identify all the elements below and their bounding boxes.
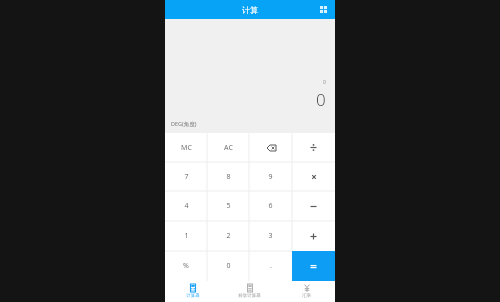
- staticText: 计算器: [186, 293, 200, 299]
- staticText: 3: [268, 231, 273, 241]
- button[interactable]: 2: [207, 221, 249, 251]
- staticText: 0: [316, 88, 326, 111]
- button[interactable]: Plus: [292, 221, 335, 251]
- button[interactable]: 8: [207, 162, 249, 191]
- button[interactable]: 汇率: [278, 281, 335, 302]
- staticText: 汇率: [302, 293, 311, 299]
- staticText: 0: [226, 261, 231, 271]
- button[interactable]: %: [165, 251, 207, 281]
- other: Divide: [310, 144, 317, 151]
- staticText: 4: [184, 201, 189, 211]
- button[interactable]: History: [317, 3, 331, 17]
- button[interactable]: 7: [165, 162, 207, 191]
- button[interactable]: 9: [249, 162, 292, 191]
- staticText: %: [183, 261, 189, 271]
- button[interactable]: 4: [165, 191, 207, 221]
- staticText: 7: [184, 172, 189, 182]
- other: Plus: [310, 233, 317, 240]
- button[interactable]: 计算器: [165, 281, 221, 302]
- button[interactable]: AC: [207, 133, 249, 162]
- staticText: 0: [323, 79, 326, 86]
- staticText: DEG(角度): [171, 120, 197, 128]
- staticText: 9: [268, 172, 273, 182]
- staticText: 科学计算器: [238, 293, 261, 299]
- button[interactable]: Divide: [292, 133, 335, 162]
- staticText: AC: [224, 143, 233, 153]
- button[interactable]: 5: [207, 191, 249, 221]
- button[interactable]: MC: [165, 133, 207, 162]
- staticText: 1: [184, 231, 189, 241]
- staticText: 计算: [242, 5, 258, 15]
- staticText: 8: [226, 172, 231, 182]
- staticText: MC: [181, 143, 192, 153]
- other: Minus: [310, 203, 317, 210]
- button[interactable]: 0: [207, 251, 249, 281]
- button[interactable]: 6: [249, 191, 292, 221]
- button[interactable]: 科学计算器: [221, 281, 278, 302]
- button[interactable]: Multiply: [292, 162, 335, 191]
- button[interactable]: 3: [249, 221, 292, 251]
- staticText: 2: [226, 231, 231, 241]
- staticText: 6: [268, 201, 273, 211]
- button[interactable]: Equals: [292, 251, 335, 281]
- other: Multiply: [311, 174, 317, 180]
- staticText: 5: [226, 201, 231, 211]
- button[interactable]: Minus: [292, 191, 335, 221]
- staticText: .: [270, 261, 272, 271]
- button[interactable]: Backspace: [249, 133, 292, 162]
- button[interactable]: 1: [165, 221, 207, 251]
- other: Backspace: [265, 142, 277, 154]
